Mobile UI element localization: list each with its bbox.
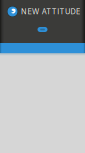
button[interactable]: Menu [37,27,47,32]
staticText: NEW ATTITUDE [21,7,80,16]
